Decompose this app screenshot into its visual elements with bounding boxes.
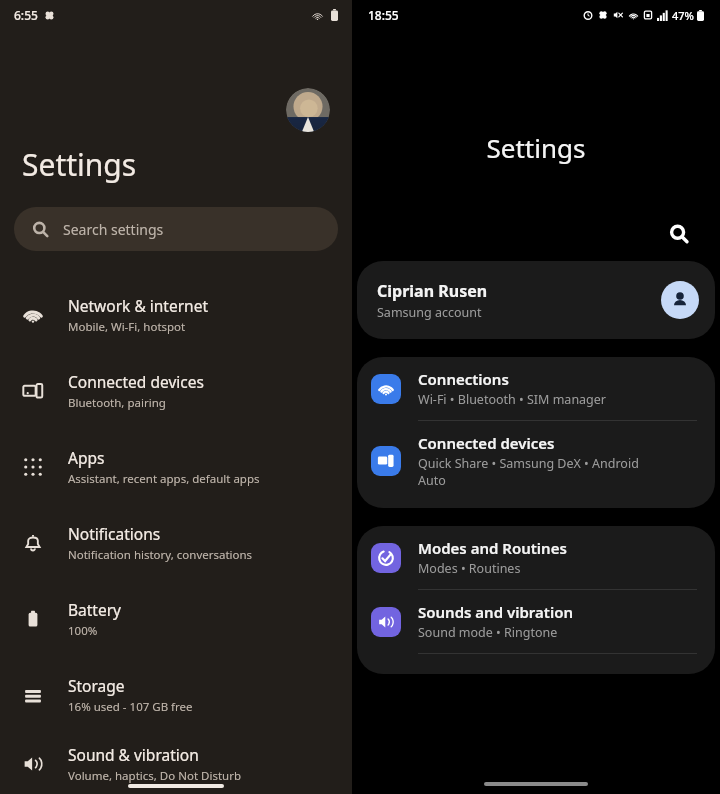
button[interactable]: Ciprian Rusen bbox=[357, 261, 715, 339]
staticText: Sound & vibration bbox=[68, 744, 199, 765]
button[interactable]: Account avatar bbox=[286, 88, 330, 132]
staticText: Ciprian Rusen bbox=[377, 280, 488, 302]
staticText: Modes and Routines bbox=[418, 538, 567, 558]
button[interactable]: Connected devices bbox=[0, 353, 352, 429]
button[interactable]: Storage bbox=[0, 657, 352, 733]
staticText: Bluetooth, pairing bbox=[68, 395, 166, 411]
staticText: Sounds and vibration bbox=[418, 602, 573, 622]
button[interactable]: Sounds and vibration bbox=[357, 590, 715, 653]
button[interactable]: Search bbox=[662, 217, 696, 251]
staticText: Settings bbox=[352, 130, 720, 165]
button[interactable]: Connections bbox=[357, 357, 715, 420]
staticText: Search settings bbox=[63, 220, 164, 239]
staticText: Connected devices bbox=[418, 433, 555, 453]
staticText: Mobile, Wi-Fi, hotspot bbox=[68, 319, 186, 335]
staticText: Storage bbox=[68, 675, 125, 696]
button[interactable]: Search settings bbox=[14, 207, 338, 251]
staticText: Wi-Fi • Bluetooth • SIM manager bbox=[418, 391, 607, 408]
staticText: 47% bbox=[672, 8, 694, 23]
button[interactable]: Modes and Routines bbox=[357, 526, 715, 589]
staticText: Network & internet bbox=[68, 295, 208, 316]
staticText: 18:55 bbox=[368, 7, 399, 23]
staticText: 100% bbox=[68, 623, 98, 639]
staticText: Connections bbox=[418, 369, 509, 389]
button[interactable]: Battery bbox=[0, 581, 352, 657]
staticText: Volume, haptics, Do Not Disturb bbox=[68, 768, 241, 784]
staticText: Settings bbox=[22, 144, 137, 185]
staticText: Notifications bbox=[68, 523, 161, 544]
staticText: Sound mode • Ringtone bbox=[418, 624, 558, 641]
staticText: Connected devices bbox=[68, 371, 204, 392]
staticText: Samsung account bbox=[377, 304, 482, 321]
staticText: Quick Share • Samsung DeX • Android Auto bbox=[418, 455, 639, 488]
staticText: 6:55 bbox=[14, 7, 38, 23]
staticText: Modes • Routines bbox=[418, 560, 521, 577]
button[interactable]: Sound & vibration bbox=[0, 733, 352, 794]
staticText: 16% used - 107 GB free bbox=[68, 699, 193, 715]
staticText: Notification history, conversations bbox=[68, 547, 253, 563]
staticText: Battery bbox=[68, 599, 122, 620]
button[interactable]: Notifications bbox=[0, 505, 352, 581]
button[interactable]: Connected devices bbox=[357, 421, 715, 500]
button[interactable]: Apps bbox=[0, 429, 352, 505]
staticText: Assistant, recent apps, default apps bbox=[68, 471, 260, 487]
staticText: Apps bbox=[68, 447, 105, 468]
button[interactable]: Network & internet bbox=[0, 277, 352, 353]
